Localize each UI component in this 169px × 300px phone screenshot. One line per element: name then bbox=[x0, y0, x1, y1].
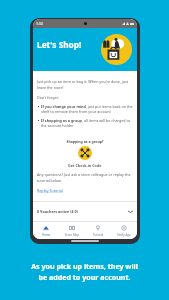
button[interactable]: Store Map bbox=[59, 222, 85, 239]
staticText: 1:34 bbox=[36, 21, 43, 26]
staticText: 0 Vouchers active (£ 0) bbox=[37, 209, 78, 214]
staticText: Let's Shop! bbox=[37, 39, 82, 50]
staticText: Tutorial bbox=[93, 233, 104, 237]
staticText: Don't forget: bbox=[37, 95, 59, 100]
button[interactable]: 0 Vouchers active (£ 0) bbox=[33, 202, 137, 221]
staticText: If shopping as a group, all items will b… bbox=[41, 118, 133, 128]
staticText: Shopping as a group? bbox=[37, 139, 133, 144]
button[interactable]: How it works bbox=[101, 34, 132, 65]
staticText: Store Map bbox=[65, 233, 79, 237]
staticText: Get Check-in Code bbox=[68, 163, 102, 168]
staticText: Any questions? Just ask a store colleagu… bbox=[37, 172, 133, 183]
button[interactable]: Replay Tutorial bbox=[37, 188, 63, 193]
staticText: If you change your mind, just put items … bbox=[41, 104, 133, 114]
staticText: Verify Age bbox=[117, 233, 131, 237]
staticText: As you pick up items, they will be added… bbox=[0, 261, 169, 282]
staticText: Home bbox=[42, 233, 51, 237]
button[interactable]: Get Check-in Code bbox=[37, 146, 133, 168]
staticText: Just pick up an item or bag it. When you… bbox=[37, 79, 133, 90]
button[interactable]: Tutorial bbox=[85, 222, 111, 239]
button[interactable]: Home bbox=[33, 222, 59, 239]
button[interactable]: Verify Age bbox=[111, 222, 137, 239]
